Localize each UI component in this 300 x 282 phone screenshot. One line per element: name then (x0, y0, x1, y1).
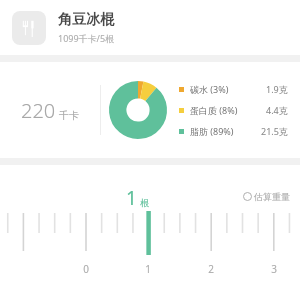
staticText: 角豆冰棍 (58, 11, 114, 29)
button[interactable]: Estimated weight info (241, 189, 292, 204)
staticText: 估算重量 (254, 191, 290, 202)
button[interactable]: Food icon (0, 0, 300, 55)
button[interactable] (0, 213, 300, 265)
staticText: 碳水 (3%) (190, 83, 229, 95)
staticText: 2 (203, 262, 219, 276)
staticText: 千卡 (59, 109, 79, 122)
staticText: 1.9克 (266, 83, 288, 95)
staticText: 蛋白质 (8%) (190, 104, 238, 116)
other: Estimated weight info (243, 192, 252, 201)
staticText: 1099千卡/5根 (58, 32, 115, 44)
staticText: 0 (78, 262, 94, 276)
other: Food icon (12, 11, 46, 45)
staticText: 3 (266, 262, 282, 276)
staticText: 21.5克 (261, 125, 288, 137)
staticText: 1 (126, 185, 137, 211)
staticText: 220 (21, 97, 56, 124)
staticText: 4.4克 (266, 104, 288, 116)
button[interactable]: 220 (0, 62, 300, 158)
staticText: 1 (140, 262, 156, 276)
staticText: 根 (140, 197, 149, 208)
staticText: 脂肪 (89%) (190, 125, 234, 137)
